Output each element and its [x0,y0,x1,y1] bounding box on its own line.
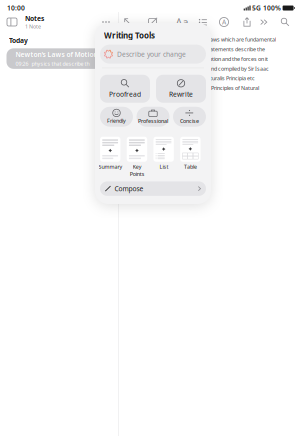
staticText: Today [9,36,28,45]
button[interactable]: Toggle Sidebar [5,15,19,29]
button[interactable]: Proofread [100,75,150,103]
staticText: Summary [98,163,122,170]
staticText: Mathematica, or the Mathematical Princip… [126,84,259,91]
staticText: 100% [263,4,281,12]
button[interactable]: Format [195,14,211,30]
button[interactable]: Share [239,14,255,30]
button[interactable]: Concise [173,107,206,127]
button[interactable]: Professional [136,107,169,127]
staticText: Professional [138,117,168,124]
staticText: 5G [252,4,261,12]
staticText: physics that describe th [31,60,89,67]
button[interactable]: Collapse [120,14,136,30]
staticText: Notes [25,14,44,23]
button[interactable]: Summary [100,137,120,170]
staticText: A [222,18,226,26]
staticText: Newton's laws of motion are three laws w… [126,36,276,43]
button[interactable]: Describe your change [100,45,206,64]
staticText: Friendly [107,117,126,124]
staticText: Aa [175,15,188,29]
button[interactable]: Text Style [174,14,190,30]
button[interactable]: Table [180,137,201,170]
button[interactable]: New Note [145,14,161,30]
button[interactable]: Friendly [100,107,133,127]
button[interactable]: More Actions [256,14,272,30]
staticText: Newton's Laws of Motion, [15,50,99,59]
staticText: Rewrite [169,90,193,99]
staticText: to classical mechanics. They are stateme… [126,46,265,53]
staticText: Table [184,163,197,170]
button[interactable]: Compose [100,181,206,196]
staticText: 1 Note [25,23,41,30]
staticText: Writing Tools [104,30,155,41]
button[interactable]: List [153,137,174,170]
button[interactable]: Annotate [216,14,232,30]
staticText: Proofread [109,90,141,99]
button[interactable]: More [98,14,114,30]
button[interactable]: Newton's Laws of Motion, [6,48,118,69]
button[interactable]: Search [277,14,293,30]
staticText: 09:26 [15,60,28,67]
staticText: Key Points [129,163,144,177]
staticText: List [159,163,168,170]
button[interactable]: Key Points [127,137,147,177]
staticText: Describe your change [117,50,186,59]
staticText: Compose [114,184,143,193]
staticText: Concise [180,117,199,124]
staticText: relationship between an object's motion … [126,55,268,62]
button[interactable]: Rewrite [156,75,206,103]
staticText: acting on it. They were first stated and… [126,65,269,72]
staticText: Newton in his work Philosophiae Naturali… [126,75,255,82]
staticText: 10:00 [7,4,25,12]
